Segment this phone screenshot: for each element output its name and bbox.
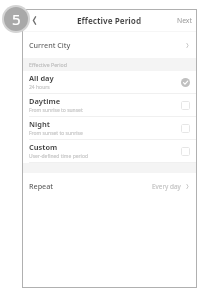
staticText: From sunset to sunrise bbox=[29, 130, 83, 137]
staticText: User-defined time period bbox=[29, 153, 88, 160]
button[interactable]: Back bbox=[26, 12, 42, 28]
staticText: Daytime bbox=[29, 96, 61, 106]
button[interactable]: Night bbox=[22, 117, 197, 140]
staticText: From sunrise to sunset bbox=[29, 107, 83, 114]
staticText: Current City bbox=[29, 40, 71, 50]
staticText: Custom bbox=[29, 142, 58, 152]
staticText: Repeat bbox=[29, 181, 54, 191]
staticText: Effective Period bbox=[29, 61, 67, 68]
button[interactable]: All day bbox=[22, 71, 197, 94]
staticText: 5 bbox=[12, 9, 21, 29]
staticText: Night bbox=[29, 119, 50, 129]
staticText: 24 hours bbox=[29, 84, 50, 91]
staticText: Every day bbox=[152, 182, 181, 191]
button[interactable]: Daytime bbox=[22, 94, 197, 117]
button[interactable]: Custom bbox=[22, 140, 197, 163]
button[interactable]: Next bbox=[177, 16, 192, 25]
staticText: All day bbox=[29, 73, 54, 83]
staticText: Next bbox=[177, 16, 192, 25]
button[interactable]: Current City bbox=[22, 32, 197, 58]
button[interactable]: Repeat bbox=[22, 173, 197, 199]
staticText: Effective Period bbox=[77, 15, 142, 26]
